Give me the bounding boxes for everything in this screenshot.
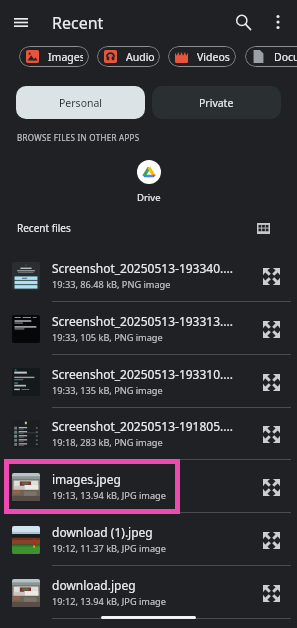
staticText: 19:33, 135 kB, PNG image bbox=[52, 384, 163, 397]
staticText: 19:18, 283 kB, PNG image bbox=[52, 436, 163, 449]
staticText: Screenshot_20250513-193313.... bbox=[52, 313, 233, 329]
staticText: Screenshot_20250513-193340.... bbox=[52, 260, 233, 276]
button[interactable]: images.jpeg bbox=[0, 460, 297, 513]
staticText: 19:33, 86.48 kB, PNG image bbox=[52, 278, 171, 291]
staticText: Screenshot_20250513-191805.... bbox=[52, 418, 233, 434]
staticText: Documents bbox=[274, 50, 297, 64]
button[interactable]: Screenshot_20250513-193340.... bbox=[0, 249, 297, 302]
staticText: Screenshot_20250513-193310.... bbox=[52, 366, 233, 382]
button[interactable]: More options bbox=[263, 7, 293, 37]
button[interactable]: download.jpeg bbox=[0, 566, 297, 619]
button[interactable]: Expand bbox=[254, 523, 288, 557]
staticText: Audio bbox=[126, 50, 154, 64]
button[interactable]: Expand bbox=[254, 312, 288, 346]
staticText: download.jpeg bbox=[52, 577, 136, 593]
button[interactable]: download (1).jpeg bbox=[0, 513, 297, 566]
button[interactable]: Screenshot_20250513-193313.... bbox=[0, 302, 297, 355]
button[interactable]: Images bbox=[19, 46, 89, 67]
staticText: Videos bbox=[197, 50, 230, 64]
staticText: Drive bbox=[137, 191, 161, 204]
button[interactable]: Screenshot_20250513-193310.... bbox=[0, 355, 297, 408]
button[interactable]: Drive bbox=[126, 160, 171, 204]
staticText: 19:12, 13.94 kB, JPG image bbox=[52, 595, 166, 608]
button[interactable]: Audio bbox=[97, 46, 160, 67]
button[interactable]: Expand bbox=[254, 417, 288, 451]
button[interactable]: Expand bbox=[254, 470, 288, 504]
staticText: Recent bbox=[52, 12, 104, 34]
staticText: Images bbox=[48, 50, 83, 64]
button[interactable]: Screenshot_20250513-191805.... bbox=[0, 407, 297, 460]
button[interactable]: Expand bbox=[254, 259, 288, 293]
staticText: 19:33, 105 kB, PNG image bbox=[52, 331, 163, 344]
button[interactable]: Navigation menu bbox=[6, 7, 36, 37]
staticText: Personal bbox=[59, 96, 103, 110]
staticText: 19:13, 13.94 kB, JPG image bbox=[52, 489, 166, 502]
button[interactable]: Videos bbox=[168, 46, 236, 67]
staticText: Recent files bbox=[17, 221, 71, 235]
staticText: images.jpeg bbox=[52, 471, 121, 487]
button[interactable]: Documents bbox=[245, 46, 297, 67]
button[interactable]: Personal bbox=[16, 86, 145, 119]
button[interactable]: Private bbox=[152, 86, 281, 119]
button[interactable]: Expand bbox=[254, 365, 288, 399]
staticText: 19:12, 11.37 kB, JPG image bbox=[52, 542, 166, 555]
staticText: BROWSE FILES IN OTHER APPS bbox=[17, 132, 140, 143]
button[interactable]: Expand bbox=[254, 576, 288, 610]
button[interactable]: Search bbox=[228, 7, 258, 37]
staticText: Private bbox=[199, 96, 234, 110]
button[interactable]: Grid view bbox=[251, 216, 275, 240]
staticText: download (1).jpeg bbox=[52, 524, 153, 540]
